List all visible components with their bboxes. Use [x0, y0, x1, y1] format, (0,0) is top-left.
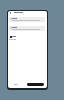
- button[interactable]: [9, 17, 45, 22]
- button[interactable]: App icon: [10, 36, 12, 38]
- button[interactable]: [9, 26, 45, 31]
- button[interactable]: [12, 82, 19, 86]
- button[interactable]: [27, 83, 44, 86]
- button[interactable]: Back: [8, 11, 12, 15]
